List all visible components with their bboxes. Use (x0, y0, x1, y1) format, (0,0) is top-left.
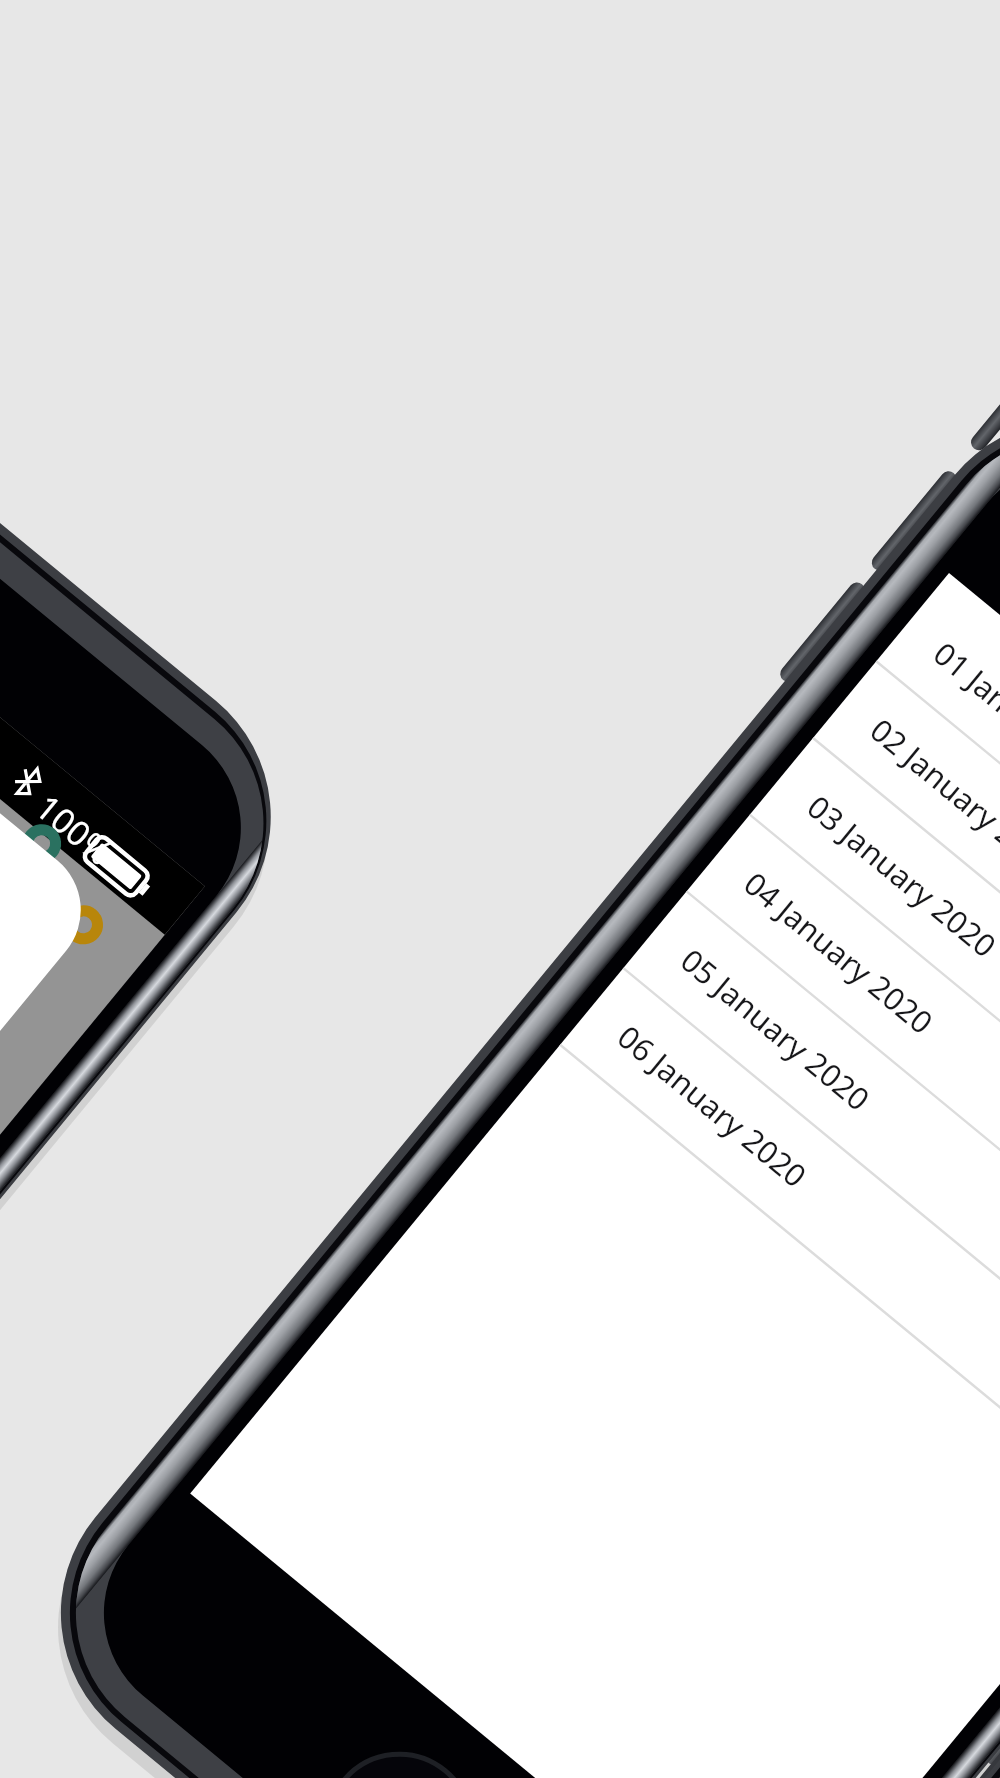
button[interactable]: Phone mockups showing a list of January … (0, 0, 1000, 1778)
